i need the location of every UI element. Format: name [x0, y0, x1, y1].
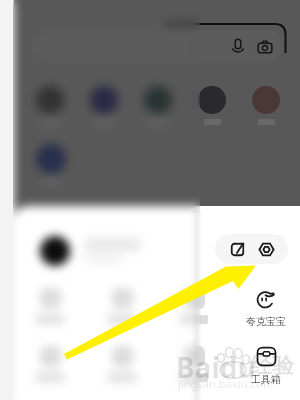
button[interactable]: 夸克宝宝 [236, 288, 296, 328]
button[interactable] [198, 86, 226, 114]
button[interactable] [164, 288, 224, 324]
staticText: 工具箱 [251, 373, 281, 386]
button[interactable]: Share [215, 234, 288, 264]
button[interactable] [20, 346, 80, 382]
button[interactable] [90, 86, 118, 114]
button[interactable] [144, 86, 172, 114]
button[interactable] [36, 86, 64, 114]
button[interactable] [164, 346, 224, 382]
button[interactable] [36, 144, 66, 174]
staticText: 夸克宝宝 [246, 315, 286, 328]
button[interactable] [20, 288, 80, 324]
button[interactable] [20, 288, 80, 324]
staticText: jingyan.baidu.com [178, 376, 274, 391]
button[interactable] [92, 346, 152, 382]
button[interactable]: Settings [258, 241, 275, 258]
button[interactable] [164, 288, 200, 324]
button[interactable] [252, 86, 280, 114]
staticText: 经验 [250, 352, 294, 380]
button[interactable] [33, 30, 283, 62]
button[interactable]: Camera search [257, 39, 273, 55]
button[interactable] [90, 86, 118, 114]
button[interactable]: Share [229, 241, 246, 258]
button[interactable] [40, 236, 70, 266]
button[interactable] [144, 86, 172, 114]
button[interactable] [164, 346, 200, 382]
button[interactable] [36, 144, 66, 174]
button[interactable] [36, 86, 64, 114]
button[interactable]: 工具箱 [236, 346, 296, 386]
button[interactable]: Voice search [230, 38, 246, 54]
button[interactable] [20, 346, 80, 382]
button[interactable] [92, 288, 152, 324]
button[interactable] [92, 288, 152, 324]
staticText: Baidu [176, 348, 256, 386]
button[interactable] [40, 236, 70, 266]
button[interactable] [92, 346, 152, 382]
button[interactable] [198, 86, 200, 114]
